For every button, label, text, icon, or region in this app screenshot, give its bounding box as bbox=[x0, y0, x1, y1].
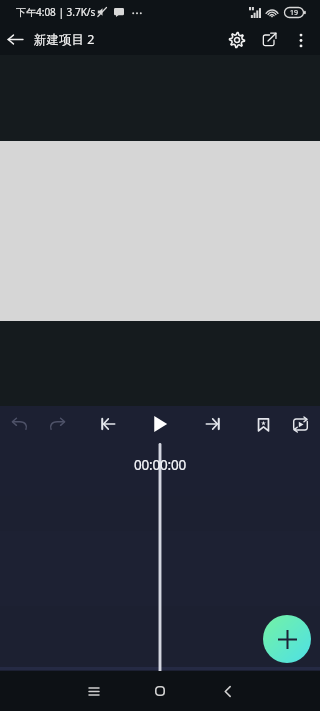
button[interactable]: Loop playback bbox=[283, 407, 317, 441]
button[interactable]: Export bbox=[254, 24, 285, 55]
staticText: 19 bbox=[290, 8, 299, 18]
button[interactable]: Redo bbox=[40, 407, 74, 441]
button[interactable]: Undo bbox=[2, 407, 36, 441]
button[interactable]: Back bbox=[0, 24, 31, 55]
button[interactable]: Bookmark bbox=[246, 407, 280, 441]
button[interactable]: Skip to start bbox=[91, 407, 125, 441]
staticText: 下午4:08 | 3.7K/s bbox=[16, 5, 96, 19]
staticText: 新建项目 2 bbox=[34, 31, 95, 48]
button[interactable]: Play bbox=[143, 407, 177, 441]
button[interactable]: Skip to end bbox=[196, 407, 230, 441]
button[interactable]: Home bbox=[140, 671, 180, 711]
button[interactable]: More options bbox=[287, 26, 315, 54]
button[interactable]: Settings bbox=[221, 24, 252, 55]
staticText: 00:00:00 bbox=[134, 456, 186, 474]
button[interactable]: Recent apps bbox=[74, 671, 114, 711]
button[interactable]: Add media bbox=[263, 615, 311, 663]
button[interactable]: Back bbox=[207, 671, 247, 711]
